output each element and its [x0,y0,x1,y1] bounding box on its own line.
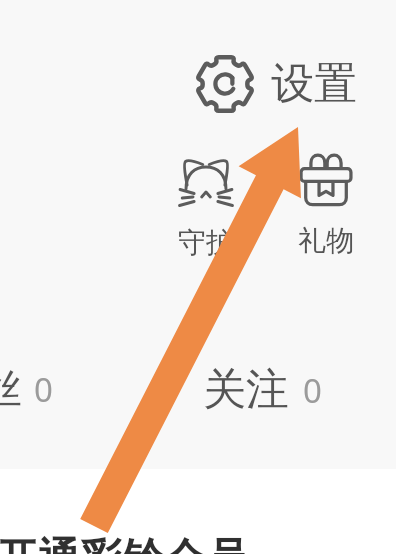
staticText: 设置 [271,57,357,111]
other: 守护 [179,159,233,199]
staticText: 丝 [0,364,22,414]
button[interactable]: 设置 [194,53,357,115]
button[interactable]: 丝 [0,364,53,414]
staticText: 0 [303,368,322,413]
button[interactable]: 关注 [203,363,322,417]
staticText: 守护 [178,225,234,260]
button[interactable]: 开通彩铃会员 [0,533,248,554]
other: 设置 [194,53,256,115]
staticText: 0 [34,367,53,412]
other: 礼物 [297,149,355,207]
staticText: 礼物 [298,223,354,258]
button[interactable]: 守护 [178,159,234,260]
button[interactable]: 礼物 [297,149,355,258]
staticText: 关注 [203,363,289,417]
